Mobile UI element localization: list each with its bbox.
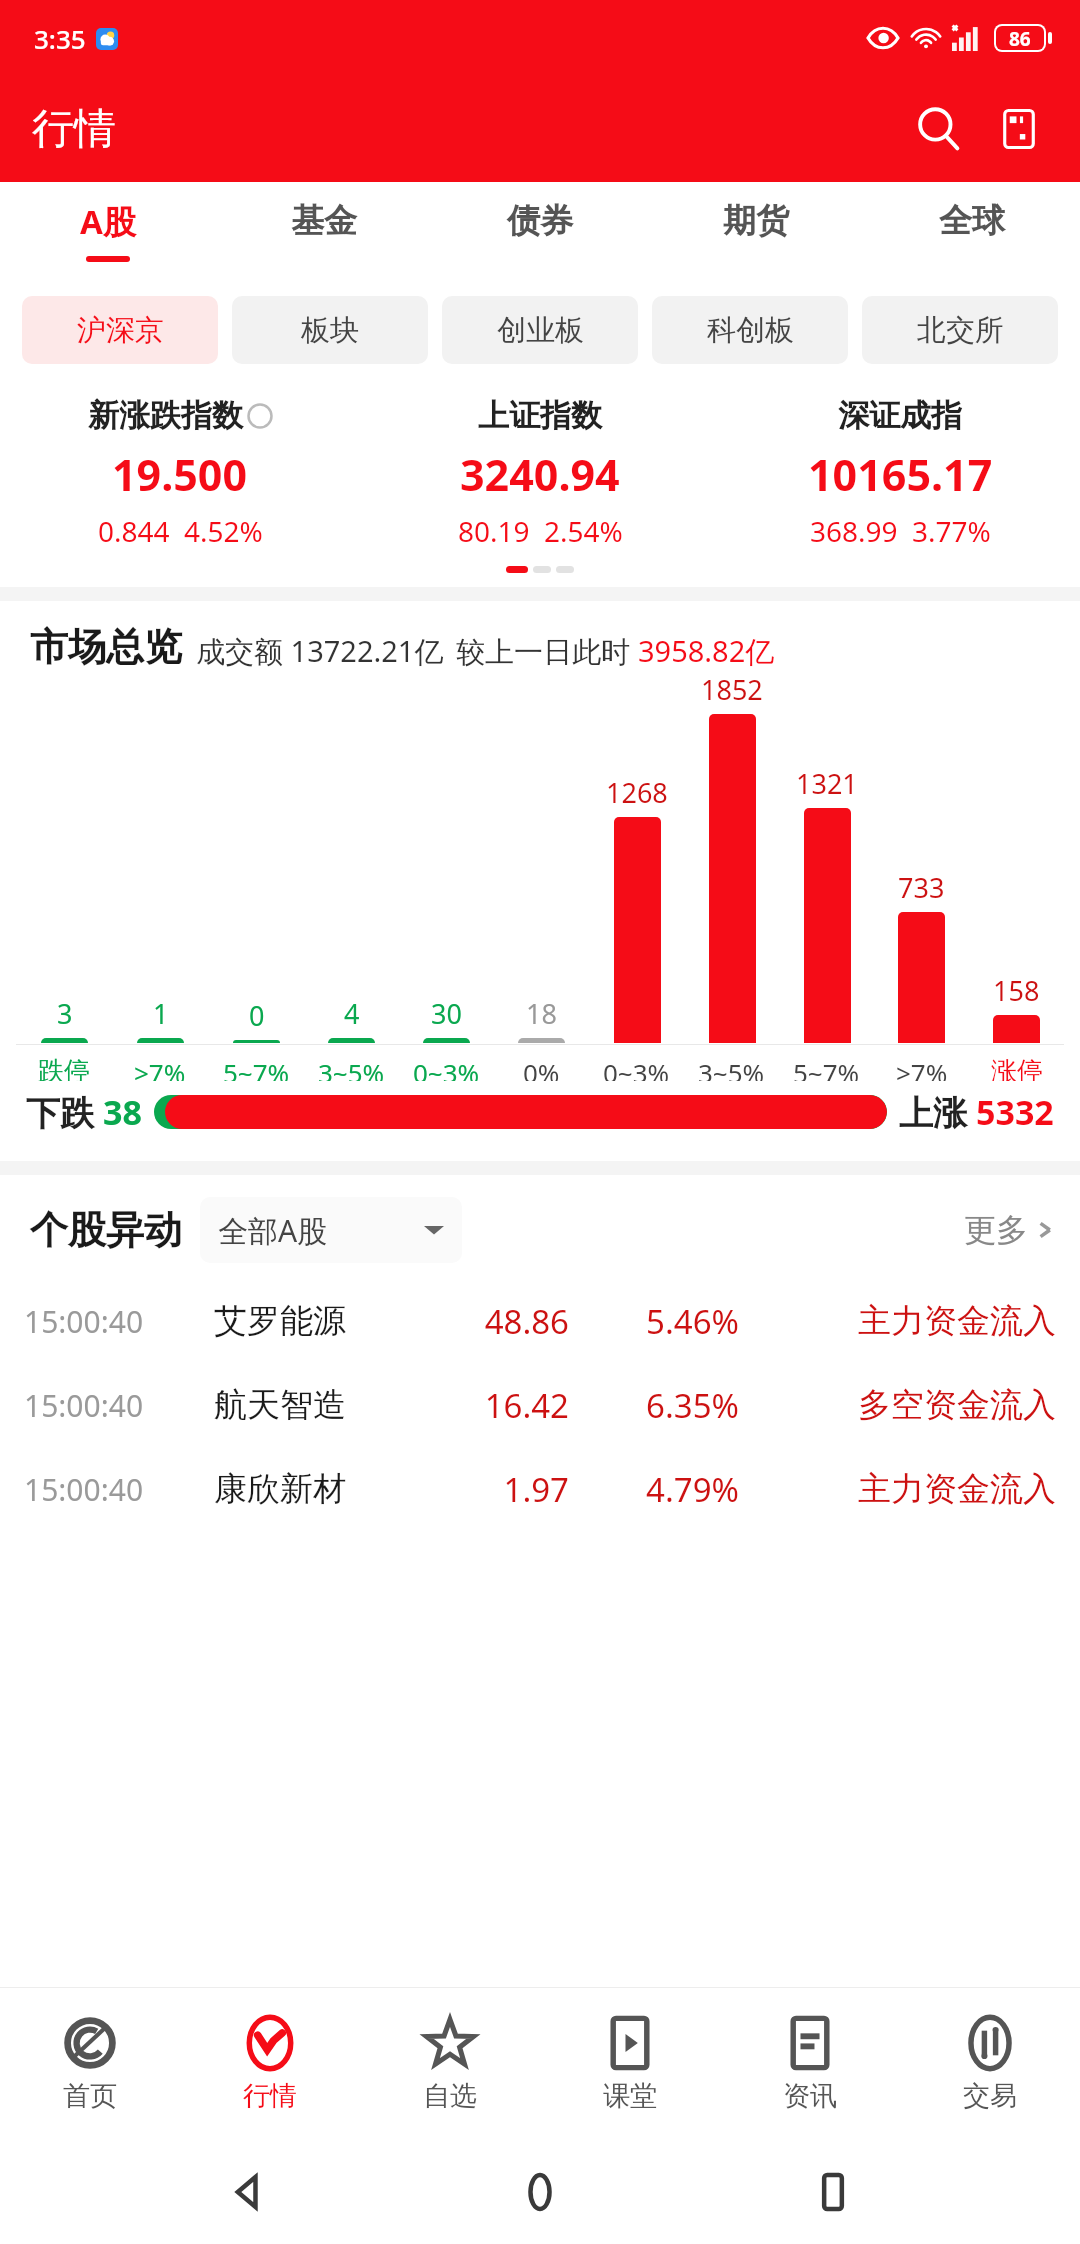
staticText: 1268: [606, 774, 668, 811]
staticText: 板块: [301, 312, 359, 349]
staticText: 艾罗能源: [214, 1300, 404, 1342]
staticText: 康欣新材: [214, 1468, 404, 1510]
button[interactable]: 上证指数: [360, 396, 720, 550]
staticText: 158: [993, 972, 1040, 1009]
staticText: 3:35: [34, 21, 86, 56]
staticText: 4.79%: [589, 1467, 739, 1512]
staticText: 1: [153, 995, 169, 1032]
staticText: 多空资金流入: [858, 1384, 1056, 1426]
button[interactable]: 自选: [360, 1988, 540, 2140]
staticText: 科创板: [707, 312, 794, 349]
button[interactable]: 15:00:40: [0, 1363, 1080, 1447]
staticText: 15:00:40: [24, 1469, 214, 1510]
staticText: 3: [57, 995, 73, 1032]
staticText: 成交额 13722.21亿: [196, 631, 444, 671]
staticText: 19.500: [112, 445, 248, 504]
button[interactable]: 全球: [864, 182, 1080, 278]
staticText: 10165.17: [808, 445, 993, 504]
staticText: 期货: [723, 200, 789, 242]
staticText: 5~7%: [223, 1055, 290, 1081]
staticText: 更多: [964, 1210, 1028, 1250]
staticText: 新涨跌指数: [88, 396, 243, 435]
button[interactable]: 创业板: [442, 296, 638, 364]
staticText: 3958.82亿: [638, 631, 775, 671]
button[interactable]: 首页: [0, 1988, 180, 2140]
staticText: 16.42: [404, 1383, 569, 1428]
staticText: 3~5%: [698, 1055, 765, 1081]
button[interactable]: 更多: [964, 1210, 1056, 1250]
staticText: 48.86: [404, 1299, 569, 1344]
button[interactable]: 全部A股: [200, 1197, 462, 1263]
staticText: 733: [898, 869, 945, 906]
staticText: 0.844: [98, 512, 170, 550]
staticText: 行情: [32, 103, 116, 156]
staticText: 86: [1009, 26, 1031, 50]
staticText: 沪深京: [77, 312, 164, 349]
staticText: 交易: [963, 2079, 1017, 2113]
staticText: 15:00:40: [24, 1385, 214, 1426]
staticText: 30: [431, 995, 462, 1032]
staticText: 下跌: [26, 1089, 103, 1135]
button[interactable]: A股: [0, 182, 216, 278]
button[interactable]: Back: [203, 2147, 293, 2237]
staticText: 1321: [796, 765, 858, 802]
button[interactable]: 科创板: [652, 296, 848, 364]
staticText: 基金: [291, 200, 357, 242]
staticText: 上证指数: [478, 396, 602, 435]
staticText: 涨停: [991, 1055, 1043, 1081]
button[interactable]: 行情: [180, 1988, 360, 2140]
staticText: 航天智造: [214, 1384, 404, 1426]
button[interactable]: Home: [495, 2147, 585, 2237]
staticText: 80.19: [458, 512, 530, 550]
button[interactable]: 北交所: [862, 296, 1058, 364]
staticText: 3.77%: [912, 512, 991, 550]
staticText: 1852: [701, 671, 763, 708]
staticText: 3240.94: [460, 445, 620, 504]
staticText: 较上一日此时: [456, 631, 638, 671]
staticText: 0: [249, 997, 265, 1034]
staticText: >7%: [134, 1055, 186, 1081]
button[interactable]: 债券: [432, 182, 648, 278]
staticText: 全球: [939, 200, 1005, 242]
staticText: 4.52%: [184, 512, 263, 550]
staticText: 5332: [976, 1089, 1054, 1135]
staticText: 38: [103, 1089, 142, 1135]
button[interactable]: 15:00:40: [0, 1279, 1080, 1363]
button[interactable]: 板块: [232, 296, 428, 364]
staticText: 上涨: [899, 1089, 976, 1135]
staticText: 跌停: [38, 1055, 90, 1081]
staticText: 个股异动: [30, 1206, 182, 1254]
staticText: 自选: [423, 2079, 477, 2113]
button[interactable]: Scan: [984, 94, 1054, 164]
staticText: 主力资金流入: [858, 1300, 1056, 1342]
staticText: 课堂: [603, 2079, 657, 2113]
staticText: 资讯: [783, 2079, 837, 2113]
staticText: 北交所: [917, 312, 1004, 349]
button[interactable]: 资讯: [720, 1988, 900, 2140]
staticText: 1.97: [404, 1467, 569, 1512]
button[interactable]: 课堂: [540, 1988, 720, 2140]
button[interactable]: Search: [904, 94, 974, 164]
button[interactable]: Recents: [788, 2147, 878, 2237]
button[interactable]: 基金: [216, 182, 432, 278]
button[interactable]: 15:00:40: [0, 1447, 1080, 1531]
staticText: 3~5%: [318, 1055, 385, 1081]
staticText: 市场总览: [30, 623, 182, 671]
staticText: 0~3%: [413, 1055, 480, 1081]
staticText: 15:00:40: [24, 1301, 214, 1342]
staticText: 5~7%: [793, 1055, 860, 1081]
button[interactable]: 交易: [900, 1988, 1080, 2140]
staticText: 5.46%: [589, 1299, 739, 1344]
staticText: 全部A股: [218, 1210, 328, 1251]
staticText: 债券: [507, 200, 573, 242]
button[interactable]: 新涨跌指数: [0, 396, 360, 550]
staticText: 深证成指: [838, 396, 962, 435]
staticText: 6.35%: [589, 1383, 739, 1428]
button[interactable]: 期货: [648, 182, 864, 278]
staticText: 首页: [63, 2079, 117, 2113]
staticText: 0%: [523, 1055, 560, 1081]
button[interactable]: 深证成指: [720, 396, 1080, 550]
staticText: 2.54%: [544, 512, 623, 550]
button[interactable]: 沪深京: [22, 296, 218, 364]
staticText: 主力资金流入: [858, 1468, 1056, 1510]
